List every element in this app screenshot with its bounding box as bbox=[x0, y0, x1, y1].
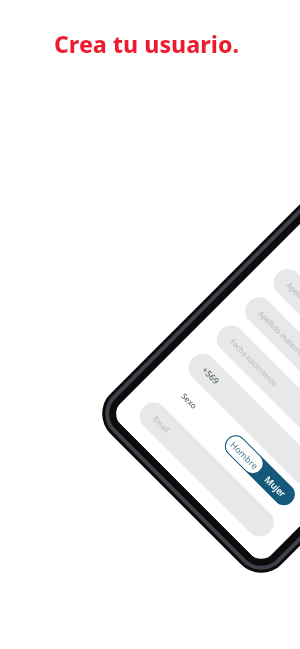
staticText: Sexo bbox=[179, 390, 200, 411]
button[interactable]: Apellido paterno bbox=[268, 263, 300, 409]
staticText: Crea tu usuario. bbox=[54, 28, 240, 59]
staticText: +569 bbox=[199, 364, 222, 387]
staticText: Fecha nacimiento bbox=[228, 337, 280, 388]
staticText: Mujer bbox=[263, 473, 289, 499]
staticText: Hombre bbox=[228, 438, 261, 472]
button[interactable]: +569 bbox=[183, 348, 300, 494]
button[interactable]: Mujer bbox=[253, 463, 298, 508]
staticText: Apellido paterno bbox=[285, 280, 300, 330]
staticText: Email bbox=[151, 414, 172, 435]
button[interactable]: Apellido materno bbox=[239, 291, 300, 437]
button[interactable]: Email bbox=[134, 397, 280, 542]
button[interactable]: RUT bbox=[296, 235, 300, 380]
staticText: Apellido materno bbox=[256, 308, 300, 359]
button[interactable]: Hombre bbox=[222, 432, 267, 477]
button[interactable]: Fecha nacimiento bbox=[211, 320, 300, 465]
